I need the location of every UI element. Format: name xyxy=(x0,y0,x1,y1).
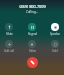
button[interactable]: Mute xyxy=(3,23,15,36)
staticText: Keypad xyxy=(28,32,37,36)
button[interactable]: End call xyxy=(27,57,38,68)
staticText: Calling… xyxy=(26,10,38,14)
button[interactable]: Add call xyxy=(3,40,15,53)
staticText: Add call xyxy=(4,49,14,53)
staticText: Mute xyxy=(6,32,13,36)
staticText: Speaker xyxy=(50,32,60,36)
button[interactable]: Video xyxy=(26,40,38,53)
staticText: (469) 800-7009 xyxy=(19,4,46,9)
staticText: Video xyxy=(29,49,36,53)
button[interactable]: Hold xyxy=(49,40,61,53)
button[interactable]: Keypad xyxy=(26,23,38,36)
staticText: Hold xyxy=(52,49,58,53)
button[interactable]: Speaker xyxy=(49,23,61,36)
